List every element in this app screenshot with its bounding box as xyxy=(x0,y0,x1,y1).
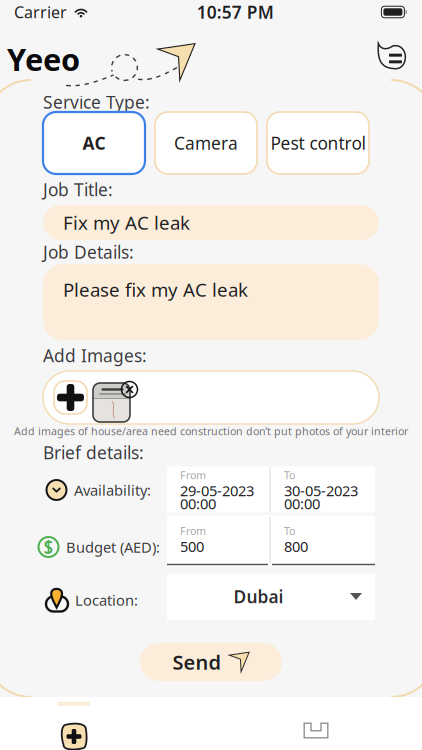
button[interactable]: AC xyxy=(43,112,145,174)
staticText: S xyxy=(43,535,53,558)
staticText: Fix my AC leak xyxy=(63,210,190,235)
staticText: To xyxy=(284,468,295,482)
staticText: Location: xyxy=(75,590,138,610)
staticText: 00:00 xyxy=(180,494,216,513)
staticText: 30-05-2023 xyxy=(284,481,358,500)
staticText: From xyxy=(180,468,206,482)
staticText: 10:57 PM xyxy=(197,0,274,23)
staticText: Add images of house/area need constructi… xyxy=(14,424,408,438)
staticText: Budget (AED): xyxy=(66,537,160,557)
staticText: Availability: xyxy=(74,480,151,500)
staticText: Add Images: xyxy=(43,344,147,367)
button[interactable]: Menu xyxy=(377,42,408,69)
staticText: Yeeo xyxy=(7,39,80,79)
staticText: Pest control xyxy=(270,131,365,154)
button[interactable]: Send xyxy=(140,643,282,681)
staticText: 800 xyxy=(284,536,308,556)
staticText: Send xyxy=(172,649,221,675)
staticText: 00:00 xyxy=(284,494,320,513)
staticText: AC xyxy=(82,131,105,154)
button[interactable]: Add xyxy=(0,699,64,747)
button[interactable]: Camera xyxy=(155,112,257,174)
staticText: Camera xyxy=(174,131,238,154)
staticText: Job Details: xyxy=(43,240,134,263)
staticText: From xyxy=(180,524,206,538)
staticText: Carrier xyxy=(14,1,67,23)
staticText: Please fix my AC leak xyxy=(63,277,248,302)
staticText: To xyxy=(284,524,295,538)
staticText: 500 xyxy=(180,536,204,556)
staticText: Service Type: xyxy=(43,90,150,113)
button[interactable]: Dubai xyxy=(167,573,375,619)
button[interactable]: Add image xyxy=(54,381,87,414)
button[interactable]: Pest control xyxy=(267,112,369,174)
staticText: 29-05-2023 xyxy=(180,481,254,500)
staticText: Dubai xyxy=(233,585,283,608)
staticText: Job Title: xyxy=(43,178,113,201)
staticText: Brief details: xyxy=(43,441,144,464)
